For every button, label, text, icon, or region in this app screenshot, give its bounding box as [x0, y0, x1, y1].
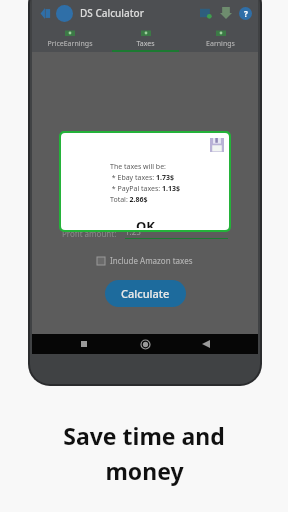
staticText: Save time and [63, 420, 225, 451]
staticText: Taxes [136, 39, 155, 49]
button[interactable]: Calculate [105, 280, 186, 307]
button[interactable]: Help [239, 7, 252, 20]
button[interactable]: Earnings [183, 26, 258, 50]
staticText: PriceEarnings [47, 39, 93, 49]
staticText: OK [136, 217, 155, 228]
staticText: ? [244, 8, 248, 19]
staticText: * Ebay taxes: 1.73$ [110, 173, 175, 183]
staticText: Profit amount: [62, 228, 117, 239]
staticText: DS Calculator [80, 6, 144, 20]
staticText: * PayPal taxes: 1.13$ [110, 184, 181, 194]
staticText: money [105, 455, 184, 486]
button[interactable]: Back [197, 335, 215, 353]
button[interactable]: Save [199, 6, 213, 20]
button[interactable]: Taxes [108, 26, 183, 50]
button[interactable]: Include Amazon taxes [95, 253, 195, 268]
button[interactable]: Save [210, 138, 224, 152]
button[interactable]: Recents [75, 335, 93, 353]
button[interactable]: Download [219, 6, 233, 20]
button[interactable]: OK [122, 215, 169, 230]
staticText: The taxes will be: [110, 162, 166, 172]
staticText: Include Amazon taxes [110, 255, 193, 266]
button[interactable]: PriceEarnings [32, 26, 108, 50]
staticText: Earnings [206, 39, 235, 49]
button[interactable]: Home [136, 335, 154, 353]
staticText: Total: 2.86$ [110, 195, 148, 205]
button[interactable]: Back [38, 6, 52, 20]
staticText: Calculate [121, 286, 170, 301]
staticText: 1.25 [125, 226, 141, 237]
button[interactable]: App icon [56, 5, 73, 22]
